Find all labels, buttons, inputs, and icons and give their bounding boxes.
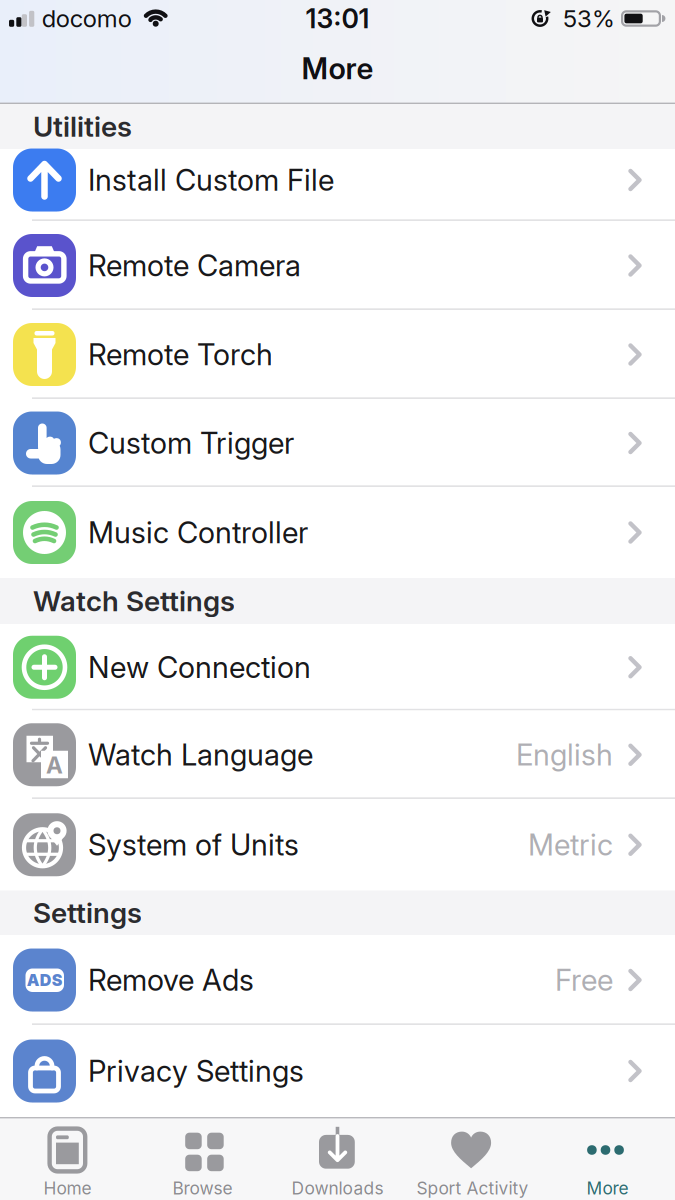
- staticText: Settings: [33, 896, 142, 929]
- staticText: Downloads: [291, 1178, 383, 1198]
- staticText: Watch Settings: [33, 584, 235, 617]
- staticText: Utilities: [33, 110, 132, 143]
- staticText: Remove Ads: [88, 963, 254, 997]
- staticText: Music Controller: [88, 515, 308, 550]
- button[interactable]: Remote Camera: [0, 221, 675, 310]
- staticText: ADS: [27, 971, 63, 990]
- button[interactable]: Custom Trigger: [0, 399, 675, 487]
- staticText: Home: [43, 1178, 91, 1198]
- staticText: More: [586, 1178, 628, 1198]
- staticText: Privacy Settings: [88, 1054, 304, 1088]
- button[interactable]: More: [540, 1123, 675, 1198]
- staticText: Sport Activity: [416, 1178, 528, 1198]
- staticText: Metric: [528, 827, 613, 862]
- button[interactable]: Privacy Settings: [0, 1025, 675, 1117]
- staticText: Remote Camera: [88, 248, 301, 283]
- button[interactable]: Browse: [135, 1123, 270, 1198]
- button[interactable]: ADS: [0, 935, 675, 1025]
- staticText: Free: [555, 963, 613, 997]
- button[interactable]: Home: [0, 1123, 135, 1198]
- staticText: English: [516, 737, 613, 772]
- staticText: New Connection: [88, 650, 311, 684]
- staticText: System of Units: [88, 827, 299, 862]
- staticText: Remote Torch: [88, 337, 273, 372]
- staticText: 53%: [563, 4, 615, 33]
- button[interactable]: New Connection: [0, 624, 675, 710]
- button[interactable]: A: [0, 710, 675, 799]
- button[interactable]: System of Units: [0, 799, 675, 890]
- staticText: Watch Language: [88, 737, 313, 772]
- staticText: Browse: [172, 1178, 232, 1198]
- staticText: Custom Trigger: [88, 426, 294, 460]
- button[interactable]: Downloads: [270, 1123, 405, 1198]
- button[interactable]: Remote Torch: [0, 310, 675, 399]
- staticText: A: [46, 752, 63, 779]
- button[interactable]: Sport Activity: [405, 1123, 540, 1198]
- staticText: More: [301, 51, 373, 86]
- button[interactable]: Install Custom File: [0, 149, 675, 221]
- staticText: docomo: [42, 4, 132, 33]
- staticText: Install Custom File: [88, 163, 334, 197]
- staticText: 13:01: [305, 3, 369, 34]
- button[interactable]: Music Controller: [0, 487, 675, 578]
